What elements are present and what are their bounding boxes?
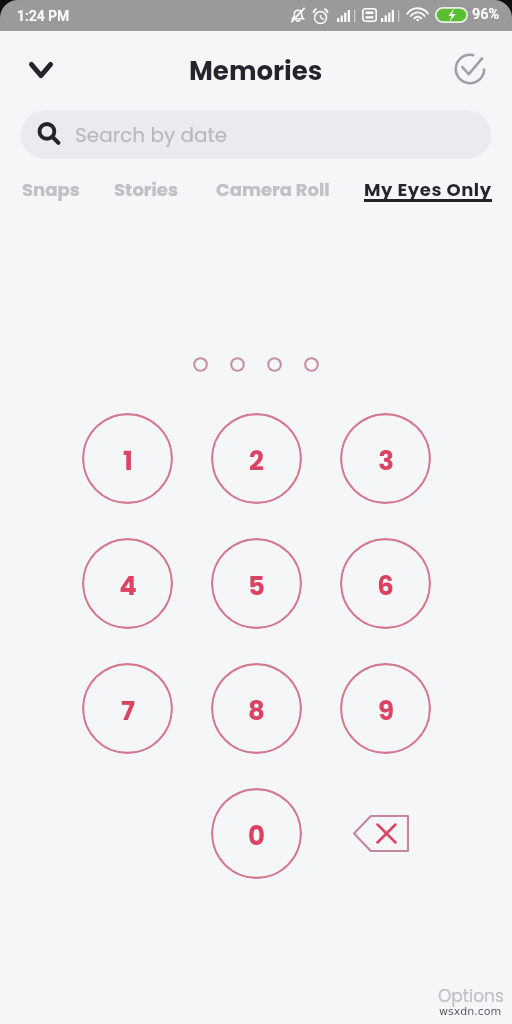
staticText: 8 [248, 693, 265, 729]
button[interactable]: 4 [82, 538, 173, 629]
button[interactable]: Stories [114, 177, 178, 202]
staticText: 9 [378, 693, 394, 729]
staticText: 6 [377, 568, 394, 604]
staticText: Search by date [75, 121, 228, 149]
button[interactable]: Select [448, 47, 492, 91]
staticText: 1 [123, 443, 133, 479]
button[interactable]: Search by date [21, 110, 491, 159]
button[interactable]: Snaps [22, 177, 80, 202]
button[interactable]: 5 [211, 538, 302, 629]
button[interactable]: 8 [211, 663, 302, 754]
staticText: 0 [248, 818, 265, 854]
staticText: Stories [114, 177, 178, 202]
staticText: Memories [189, 53, 323, 89]
button[interactable]: 3 [340, 413, 431, 504]
button[interactable]: 0 [211, 788, 302, 879]
button[interactable]: 2 [211, 413, 302, 504]
staticText: 1:24 PM [17, 8, 70, 24]
staticText: Snaps [22, 177, 80, 202]
staticText: Camera Roll [216, 177, 330, 202]
staticText: wsxdn.com [439, 1005, 502, 1018]
staticText: 4 [119, 568, 137, 604]
button[interactable]: Collapse [18, 47, 64, 93]
staticText: 96% [472, 6, 500, 23]
button[interactable]: 9 [340, 663, 431, 754]
staticText: 5 [248, 568, 265, 604]
staticText: 2 [249, 443, 264, 479]
staticText: 7 [121, 693, 135, 729]
staticText: Options [438, 984, 504, 1008]
staticText: My Eyes Only [364, 177, 492, 202]
staticText: 3 [378, 443, 394, 479]
button[interactable]: 1 [82, 413, 173, 504]
button[interactable]: Camera Roll [216, 177, 330, 202]
button[interactable]: 6 [340, 538, 431, 629]
button[interactable]: Backspace [340, 788, 431, 879]
button[interactable]: My Eyes Only [364, 177, 492, 205]
button[interactable]: Options [438, 984, 504, 1008]
button[interactable]: 7 [82, 663, 173, 754]
